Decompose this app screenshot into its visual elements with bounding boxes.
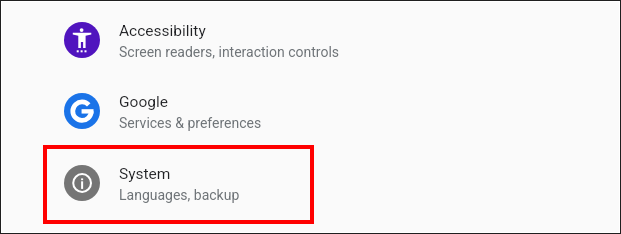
other: System <box>64 165 100 201</box>
staticText: Google <box>119 93 168 111</box>
other: Accessibility <box>64 22 100 58</box>
button[interactable]: System <box>2 154 619 212</box>
staticText: Accessibility <box>119 22 206 40</box>
staticText: Screen readers, interaction controls <box>119 44 340 60</box>
staticText: Services & preferences <box>119 115 262 131</box>
staticText: Languages, backup <box>119 187 240 203</box>
button[interactable]: Accessibility <box>2 11 619 69</box>
other: Google <box>64 93 100 129</box>
button[interactable]: Google <box>2 82 619 140</box>
staticText: System <box>119 165 171 183</box>
